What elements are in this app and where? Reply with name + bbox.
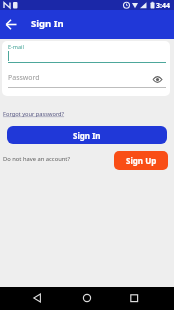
staticText: Password	[8, 73, 40, 83]
button[interactable]: Forgot your password?	[3, 110, 65, 118]
staticText: Sign In	[73, 130, 101, 141]
button[interactable]: Sign In	[7, 126, 167, 144]
button[interactable]	[2, 15, 22, 35]
button[interactable]	[28, 289, 46, 307]
button[interactable]	[78, 289, 96, 307]
button[interactable]: Sign Up	[114, 151, 168, 170]
staticText: Sign Up	[126, 155, 157, 166]
staticText: Do not have an account?	[3, 155, 70, 163]
button[interactable]	[125, 289, 143, 307]
staticText: 3:44	[156, 1, 170, 11]
staticText: Sign In	[31, 17, 64, 30]
staticText: E-mail	[8, 43, 24, 50]
